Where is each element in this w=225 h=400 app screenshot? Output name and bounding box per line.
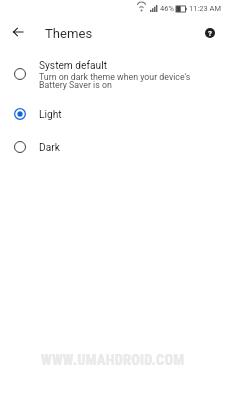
staticText: Light <box>39 109 62 121</box>
staticText: Themes <box>45 26 93 41</box>
staticText: Dark <box>39 142 60 154</box>
staticText: Turn on dark theme when your device's <box>39 72 191 82</box>
button[interactable]: System default <box>0 54 225 94</box>
staticText: WWW.UMAHDROID.COM <box>41 352 185 369</box>
staticText: 11:23 AM <box>189 4 221 13</box>
staticText: 46% <box>160 4 174 13</box>
staticText: ? <box>208 29 212 38</box>
staticText: Battery Saver is on <box>39 80 112 90</box>
button[interactable]: Help <box>199 22 221 44</box>
button[interactable]: Back <box>6 20 30 44</box>
staticText: System default <box>39 60 107 72</box>
button[interactable]: Dark <box>0 131 225 163</box>
button[interactable]: Light <box>0 98 225 130</box>
